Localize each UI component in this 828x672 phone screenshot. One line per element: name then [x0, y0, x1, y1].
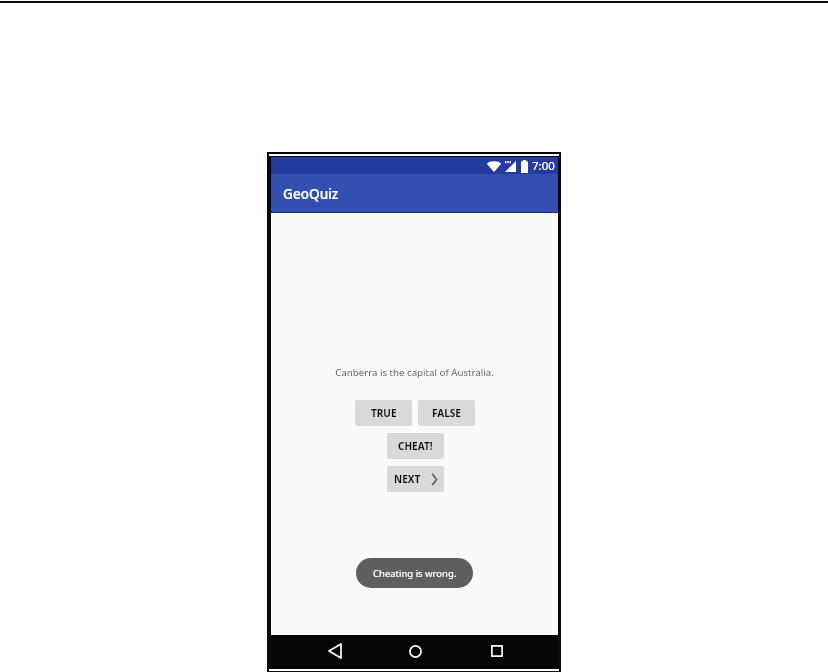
staticText: CHEAT! — [398, 439, 433, 453]
button[interactable]: FALSE — [418, 400, 475, 426]
staticText: 7:00 — [532, 158, 555, 174]
staticText: NEXT — [394, 472, 421, 486]
staticText: TRUE — [371, 406, 397, 420]
button[interactable]: CHEAT! — [387, 433, 444, 459]
button[interactable]: Recent apps — [480, 634, 514, 668]
staticText: Canberra is the capital of Australia. — [335, 366, 494, 379]
staticText: Cheating is wrong. — [373, 567, 457, 580]
staticText: FALSE — [432, 406, 461, 420]
button[interactable]: Cheating is wrong. — [356, 558, 473, 588]
button[interactable]: Back — [318, 634, 352, 668]
button[interactable]: Home — [398, 634, 432, 668]
button[interactable]: TRUE — [355, 400, 412, 426]
staticText: GeoQuiz — [283, 184, 339, 203]
button[interactable]: NEXT — [387, 466, 444, 492]
